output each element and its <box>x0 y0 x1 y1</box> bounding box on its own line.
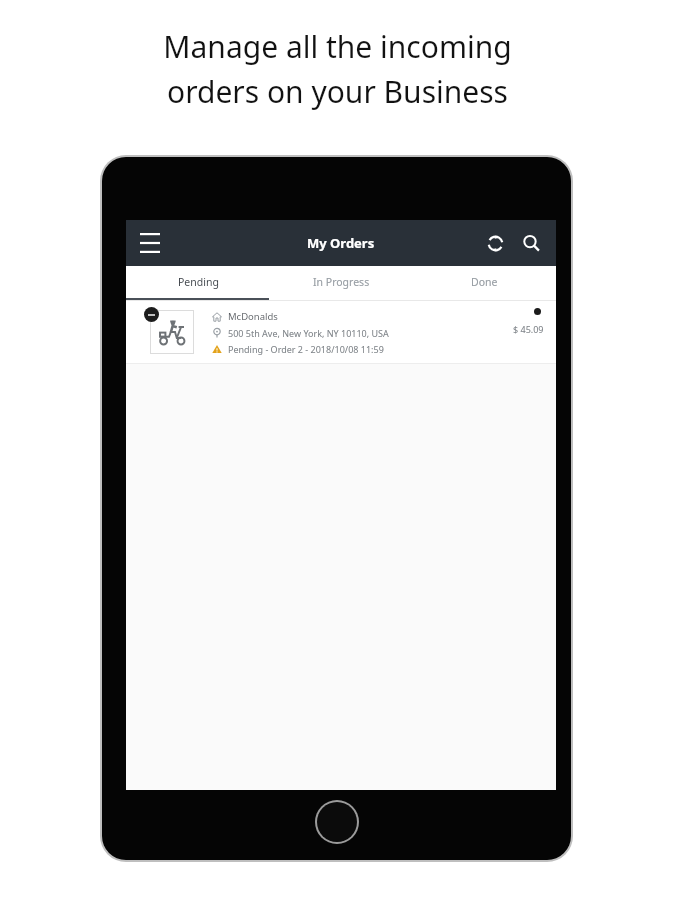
staticText: Pending <box>178 275 219 289</box>
button[interactable]: Search <box>514 226 548 260</box>
staticText: McDonalds <box>228 310 278 323</box>
button[interactable]: In Progress <box>270 266 413 298</box>
staticText: Pending - Order 2 - 2018/10/08 11:59 <box>228 343 384 355</box>
staticText: orders on your Business <box>167 71 508 112</box>
staticText: Manage all the incoming <box>163 26 512 67</box>
button[interactable]: Home <box>317 802 357 842</box>
staticText: My Orders <box>307 234 375 252</box>
button[interactable]: Done <box>413 266 556 298</box>
button[interactable]: Pending <box>126 266 270 298</box>
button[interactable]: Open navigation menu <box>132 225 168 261</box>
button[interactable]: More options <box>530 304 544 318</box>
button[interactable]: Refresh <box>478 226 512 260</box>
staticText: Done <box>471 275 498 289</box>
staticText: In Progress <box>313 275 370 289</box>
button[interactable]: McDonalds <box>126 301 556 363</box>
staticText: $ 45.09 <box>513 323 544 335</box>
staticText: 500 5th Ave, New York, NY 10110, USA <box>228 327 389 339</box>
